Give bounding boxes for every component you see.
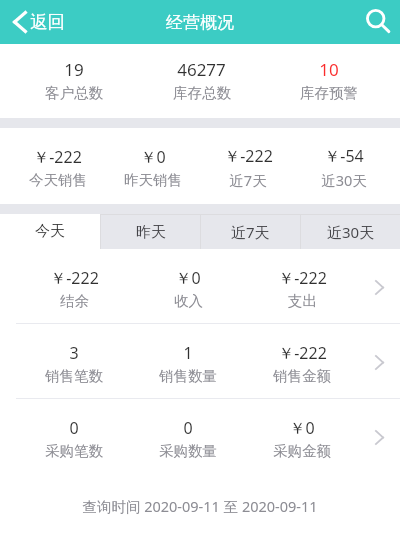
staticText: ￥-222 (278, 342, 327, 364)
button[interactable]: 0 (0, 399, 400, 474)
staticText: 收入 (174, 292, 203, 310)
button[interactable]: 今天 (0, 214, 100, 249)
staticText: 支出 (288, 292, 317, 310)
staticText: 采购数量 (159, 442, 217, 460)
staticText: ￥-222 (278, 267, 327, 289)
staticText: 库存总数 (173, 84, 231, 102)
button[interactable]: 昨天 (100, 214, 200, 249)
staticText: 库存预警 (300, 84, 358, 102)
staticText: 昨天销售 (124, 171, 182, 189)
staticText: 销售金额 (273, 367, 331, 385)
button[interactable]: Search (356, 0, 400, 44)
staticText: 今天 (35, 222, 65, 241)
staticText: 近7天 (229, 170, 267, 190)
staticText: 返回 (30, 11, 65, 33)
staticText: 19 (64, 58, 84, 81)
staticText: 查询时间 2020-09-11 至 2020-09-11 (0, 496, 400, 516)
staticText: ￥0 (140, 146, 166, 168)
staticText: ￥-222 (50, 267, 99, 289)
staticText: 经营概况 (166, 12, 234, 33)
staticText: 3 (69, 342, 79, 364)
staticText: 近30天 (321, 170, 367, 190)
button[interactable]: ￥-222 (0, 249, 400, 324)
staticText: 采购笔数 (45, 442, 103, 460)
staticText: ￥0 (175, 267, 201, 289)
staticText: 客户总数 (45, 84, 103, 102)
staticText: 0 (183, 417, 193, 439)
staticText: ￥-222 (224, 145, 273, 167)
staticText: ￥-54 (324, 145, 364, 167)
staticText: 1 (183, 342, 193, 364)
staticText: ￥-222 (33, 146, 82, 168)
staticText: 昨天 (136, 223, 166, 242)
staticText: 销售数量 (159, 367, 217, 385)
button[interactable]: 近7天 (200, 214, 300, 249)
staticText: 10 (319, 58, 339, 81)
staticText: 采购金额 (273, 442, 331, 460)
staticText: 近30天 (327, 222, 375, 242)
staticText: 0 (69, 417, 79, 439)
staticText: 销售笔数 (45, 367, 103, 385)
button[interactable]: 近30天 (300, 214, 400, 249)
staticText: ￥0 (289, 417, 315, 439)
staticText: 今天销售 (29, 171, 87, 189)
staticText: 结余 (60, 292, 89, 310)
staticText: 近7天 (231, 222, 270, 242)
button[interactable]: 3 (0, 324, 400, 399)
staticText: 46277 (177, 58, 226, 81)
button[interactable]: 返回 (0, 0, 77, 44)
